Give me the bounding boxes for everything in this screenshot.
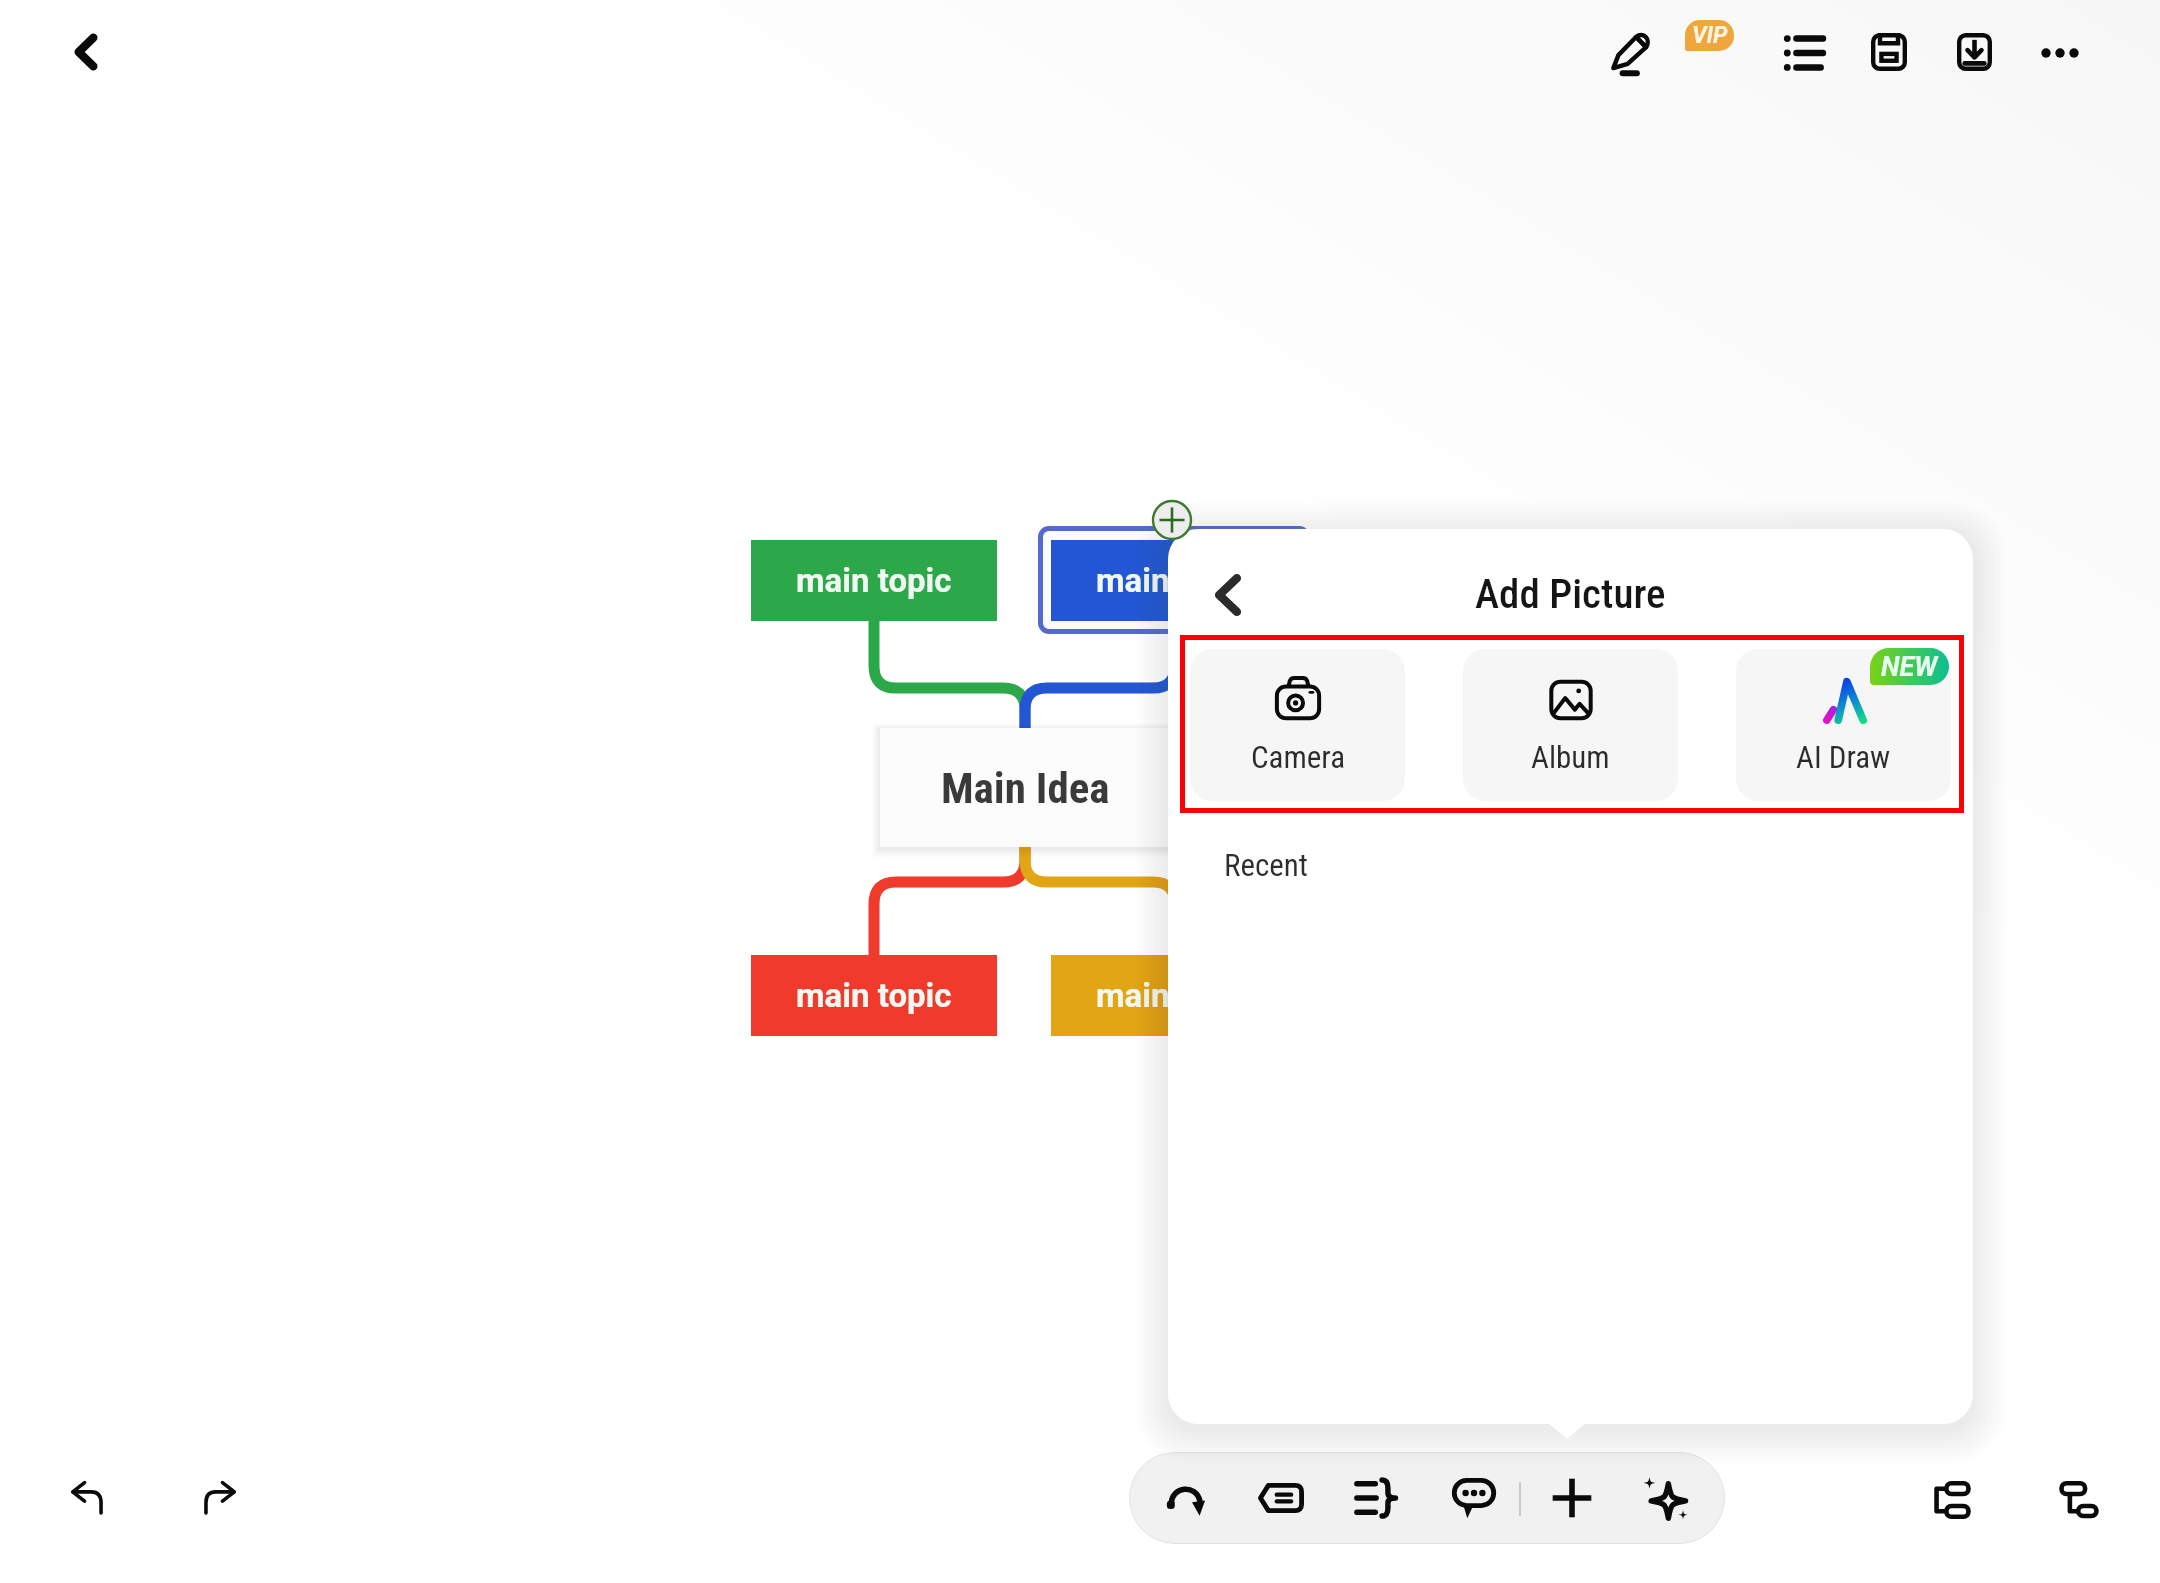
staticText: VIP <box>1692 22 1728 49</box>
button[interactable]: More options <box>2020 12 2100 92</box>
staticText: main topic <box>1096 561 1252 600</box>
button[interactable]: Camera <box>1190 649 1405 801</box>
button[interactable]: Undo <box>52 1462 124 1534</box>
button[interactable]: Tree layout <box>2039 1460 2119 1540</box>
button[interactable]: Comment <box>1429 1452 1519 1544</box>
button[interactable]: main topic <box>751 540 997 621</box>
button[interactable]: AI assist <box>1620 1452 1710 1544</box>
button[interactable]: main topic <box>751 955 997 1036</box>
button[interactable]: Export <box>1934 12 2014 92</box>
staticText: NEW <box>1881 651 1938 683</box>
button[interactable]: main topic <box>1051 955 1297 1036</box>
button[interactable]: Add <box>1527 1452 1617 1544</box>
button[interactable]: Redo <box>182 1462 254 1534</box>
button[interactable]: Right map layout <box>1911 1460 1991 1540</box>
staticText: AI Draw <box>1796 739 1891 775</box>
staticText: Main Idea <box>941 763 1110 813</box>
button[interactable]: Undo last action <box>1142 1452 1232 1544</box>
button[interactable]: Edit note <box>1236 1452 1326 1544</box>
button[interactable]: Outline view <box>1764 13 1844 93</box>
button[interactable]: Back <box>1190 557 1266 633</box>
button[interactable]: Save <box>1849 12 1929 92</box>
staticText: Add Picture <box>1475 570 1666 618</box>
button[interactable]: Text style <box>1332 1452 1422 1544</box>
button[interactable]: Edit style <box>1592 14 1670 92</box>
staticText: main topic <box>796 561 952 600</box>
staticText: Camera <box>1251 739 1345 775</box>
button[interactable]: Add child node <box>1151 499 1193 541</box>
button[interactable]: Back <box>46 12 126 92</box>
button[interactable]: AI Draw <box>1736 649 1951 801</box>
button[interactable]: VIP membership <box>1685 20 1734 51</box>
staticText: main topic <box>1096 976 1252 1015</box>
button[interactable]: Album <box>1463 649 1678 801</box>
staticText: Recent <box>1224 847 1309 883</box>
button[interactable]: Main Idea <box>880 728 1170 847</box>
staticText: main topic <box>796 976 952 1015</box>
staticText: Album <box>1531 739 1610 775</box>
button[interactable]: main topic <box>1051 540 1297 621</box>
